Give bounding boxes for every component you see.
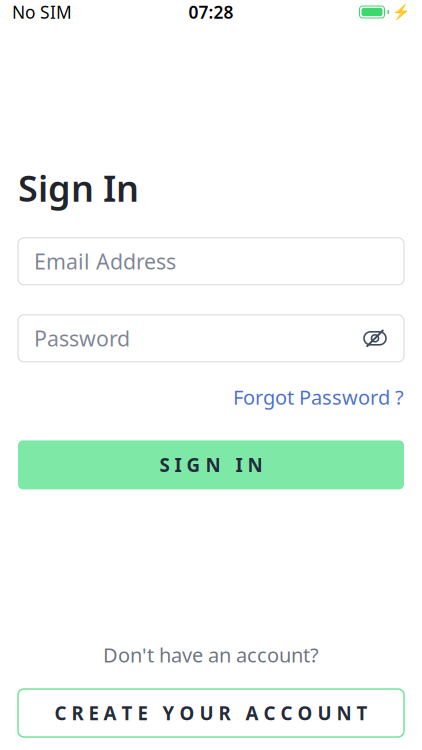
button[interactable]: Forgot Password ? — [233, 384, 404, 410]
staticText: S I G N I N — [159, 452, 262, 477]
button[interactable]: C R E A T E Y O U R A C C O U N T — [18, 689, 404, 737]
staticText: ⚡ — [392, 4, 410, 20]
staticText: Forgot Password ? — [233, 384, 404, 410]
staticText: Password — [34, 324, 130, 352]
staticText: Don't have an account? — [103, 641, 319, 668]
staticText: Sign In — [18, 164, 139, 212]
staticText: No SIM — [12, 0, 72, 23]
button[interactable]: Show password — [362, 327, 388, 349]
staticText: C R E A T E Y O U R A C C O U N T — [54, 701, 367, 725]
button[interactable]: S I G N I N — [18, 440, 404, 489]
staticText: 07:28 — [188, 0, 233, 23]
staticText: Email Address — [34, 247, 176, 275]
